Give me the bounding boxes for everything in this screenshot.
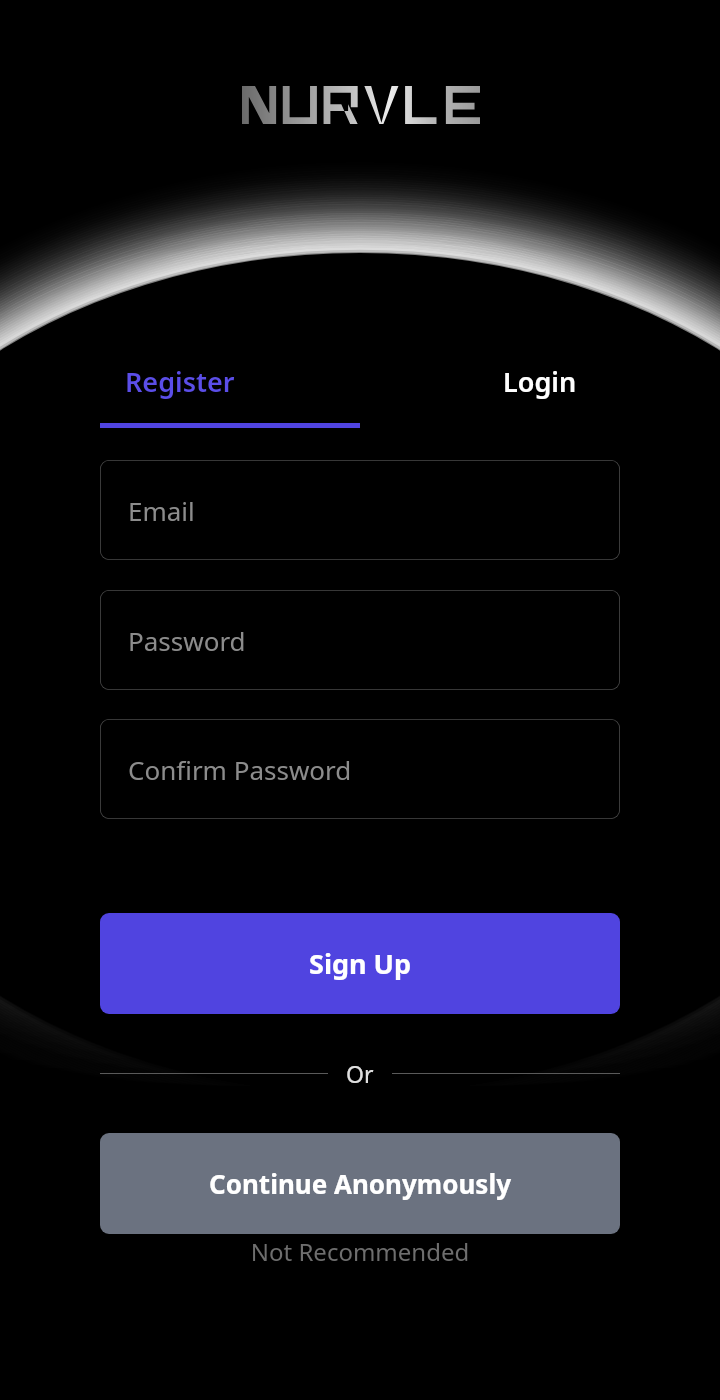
button[interactable]: Email [100, 460, 620, 560]
staticText: Not Recommended [0, 1235, 720, 1268]
staticText: Or [346, 1058, 374, 1089]
staticText: Continue Anonymously [209, 1166, 512, 1201]
staticText: Email [128, 493, 195, 528]
button[interactable]: Sign Up [100, 913, 620, 1014]
button[interactable]: Password [100, 590, 620, 690]
button[interactable]: Confirm Password [100, 719, 620, 819]
staticText: Sign Up [309, 945, 412, 982]
staticText: Password [128, 623, 246, 658]
button[interactable]: Continue Anonymously [100, 1133, 620, 1234]
button[interactable]: Register [0, 355, 360, 407]
staticText: Login [503, 363, 577, 400]
staticText: Confirm Password [128, 752, 352, 787]
staticText: Register [125, 363, 235, 400]
button[interactable]: Login [360, 355, 720, 407]
